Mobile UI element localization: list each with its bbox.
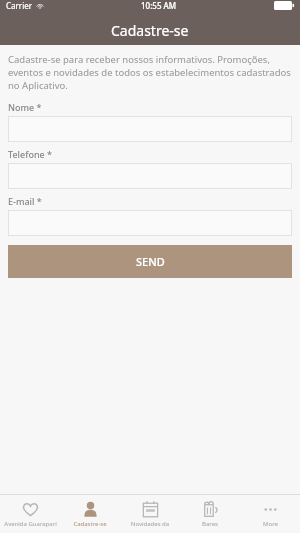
staticText: Novidades da Semana [120,520,180,528]
staticText: 10:55 AM [141,0,177,11]
button[interactable]: SEND [8,245,292,278]
staticText: Telefone * [8,148,52,160]
staticText: More [263,520,278,528]
other: Avenida Guarapari [22,501,39,518]
button[interactable]: Cadastre-se [60,495,120,533]
staticText: Cadastre-se [111,21,189,40]
other: More [262,501,279,518]
button[interactable]: Novidades da Semana [120,495,180,533]
other: Novidades da Semana [142,501,159,518]
button[interactable]: More [240,495,300,533]
staticText: SEND [136,254,165,269]
other: Cadastre-se [82,501,99,518]
staticText: Nome * [8,101,42,113]
staticText: Avenida Guarapari [4,520,57,528]
staticText: Bares [202,520,218,528]
staticText: Carrier [6,0,33,11]
button[interactable] [8,210,292,236]
button[interactable] [8,116,292,142]
button[interactable]: Avenida Guarapari [0,495,60,533]
staticText: Cadastre-se [73,520,107,528]
staticText: E-mail * [8,195,42,207]
other: Bares [202,501,219,518]
button[interactable] [8,163,292,189]
button[interactable]: Bares [180,495,240,533]
staticText: Cadastre-se para receber nossos informat… [8,53,292,92]
